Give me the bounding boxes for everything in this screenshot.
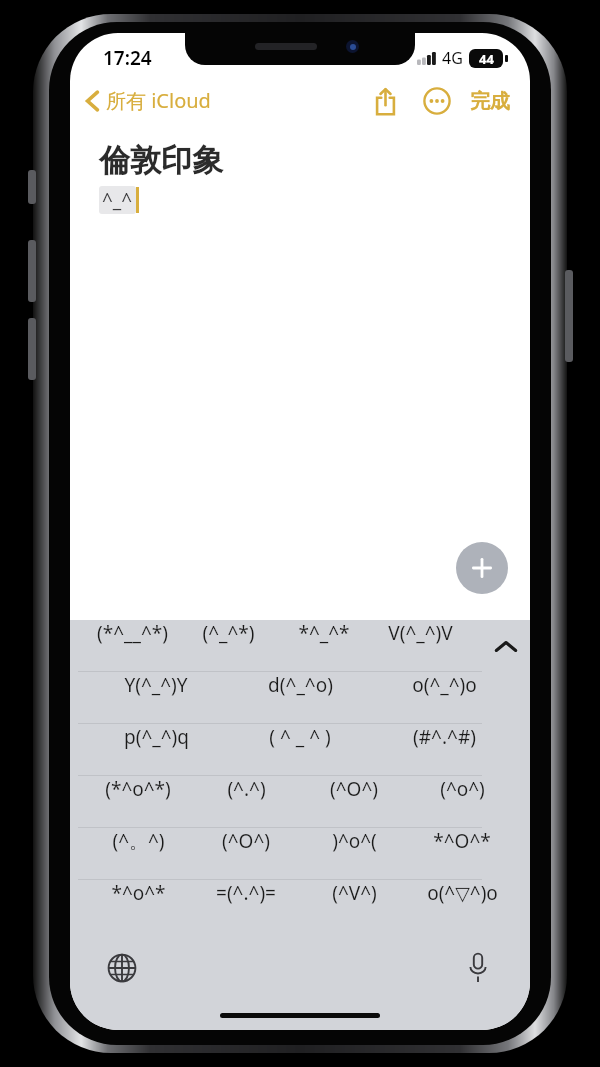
button[interactable]: d(^_^o) xyxy=(228,672,372,698)
staticText: (^V^) xyxy=(332,880,377,906)
button[interactable]: (^V^) xyxy=(300,880,408,906)
staticText: ( ^ _ ^ ) xyxy=(269,724,331,750)
staticText: ^_^ xyxy=(102,187,133,213)
button[interactable]: (^O^) xyxy=(300,776,408,802)
staticText: (*^__^*) xyxy=(97,620,168,646)
staticText: o(^_^)o xyxy=(412,672,477,698)
button[interactable]: =(^.^)= xyxy=(192,880,300,906)
staticText: 所有 iCloud xyxy=(106,87,211,114)
button[interactable]: V(^_^)V xyxy=(372,620,468,646)
staticText: 倫敦印象 xyxy=(99,141,223,180)
button[interactable]: (^O^) xyxy=(192,828,300,854)
button[interactable]: Expand suggestions xyxy=(482,622,530,670)
staticText: 17:24 xyxy=(103,45,152,71)
staticText: p(^_^)q xyxy=(124,724,189,750)
button[interactable]: o(^_^)o xyxy=(372,672,516,698)
button[interactable]: More options xyxy=(416,80,458,122)
staticText: (^。^) xyxy=(112,828,165,854)
button[interactable]: (^o^) xyxy=(408,776,516,802)
button[interactable]: (#^.^#) xyxy=(372,724,516,750)
button[interactable]: )^o^( xyxy=(300,828,408,854)
button[interactable]: o(^▽^)o xyxy=(408,880,516,906)
button[interactable]: (^.^) xyxy=(192,776,300,802)
button[interactable]: (^_^*) xyxy=(180,620,276,646)
staticText: (^o^) xyxy=(440,776,485,802)
button[interactable]: Add xyxy=(456,542,508,594)
staticText: (^O^) xyxy=(330,776,378,802)
staticText: d(^_^o) xyxy=(268,672,333,698)
staticText: *^o^* xyxy=(111,880,166,906)
button[interactable]: 完成 xyxy=(464,83,516,120)
button[interactable]: Dictation xyxy=(456,946,500,990)
button[interactable]: *^O^* xyxy=(408,828,516,854)
button[interactable]: Switch keyboard xyxy=(100,946,144,990)
staticText: 44 xyxy=(479,50,494,68)
button[interactable]: (^。^) xyxy=(84,828,192,854)
staticText: 4G xyxy=(442,47,463,69)
staticText: (#^.^#) xyxy=(413,724,476,750)
button[interactable]: ( ^ _ ^ ) xyxy=(228,724,372,750)
staticText: V(^_^)V xyxy=(388,620,453,646)
staticText: o(^▽^)o xyxy=(427,880,498,906)
staticText: *^O^* xyxy=(433,828,491,854)
button[interactable]: *^_^* xyxy=(276,620,372,646)
button[interactable]: Y(^_^)Y xyxy=(84,672,228,698)
staticText: (^O^) xyxy=(222,828,270,854)
staticText: =(^.^)= xyxy=(216,880,276,906)
staticText: *^_^* xyxy=(298,620,350,646)
staticText: (*^o^*) xyxy=(105,776,171,802)
button[interactable]: (*^o^*) xyxy=(84,776,192,802)
staticText: 完成 xyxy=(470,89,510,114)
button[interactable]: 所有 iCloud xyxy=(82,83,215,118)
button[interactable]: Share xyxy=(364,80,406,122)
staticText: (^.^) xyxy=(227,776,266,802)
staticText: (^_^*) xyxy=(202,620,255,646)
staticText: )^o^( xyxy=(332,828,377,854)
staticText: Y(^_^)Y xyxy=(124,672,188,698)
button[interactable]: (*^__^*) xyxy=(84,620,180,646)
button[interactable]: *^o^* xyxy=(84,880,192,906)
button[interactable]: p(^_^)q xyxy=(84,724,228,750)
